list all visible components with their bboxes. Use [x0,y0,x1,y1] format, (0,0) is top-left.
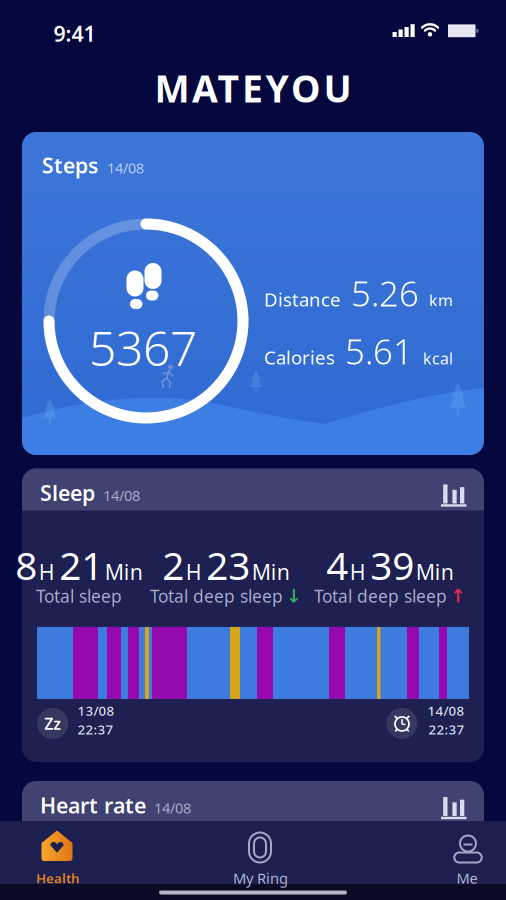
staticText: 14/08 [107,158,144,177]
staticText: 4 [326,539,348,591]
staticText: 23 [206,539,250,591]
staticText: Distance [264,287,341,312]
staticText: MATEYOU [154,63,351,113]
staticText: 14/08 [427,702,464,719]
staticText: Health [36,869,80,887]
staticText: Me [456,868,477,888]
staticText: 14/08 [154,798,191,817]
staticText: 21 [59,539,103,591]
staticText: Total sleep [36,585,122,608]
staticText: H [186,557,202,586]
staticText: Min [416,557,454,586]
staticText: kcal [423,348,453,369]
staticText: 9:41 [53,19,95,48]
staticText: 14/08 [103,485,140,505]
staticText: Calories [264,345,335,370]
staticText: ↑ [450,585,466,607]
staticText: Min [252,557,290,586]
staticText: 39 [370,539,414,591]
staticText: 22:37 [428,720,464,738]
staticText: Heart rate [40,791,146,819]
staticText: Min [105,557,143,586]
staticText: 2 [162,539,184,591]
staticText: 22:37 [77,720,113,738]
staticText: Zz [44,713,61,734]
staticText: 8 [15,539,37,591]
staticText: ↓ [286,585,302,607]
staticText: 5367 [89,316,197,379]
staticText: Total deep sleep [314,585,447,608]
staticText: My Ring [233,868,288,888]
staticText: km [429,290,453,311]
staticText: Sleep [40,478,95,507]
staticText: 13/08 [77,702,114,719]
staticText: H [39,557,55,586]
staticText: 5.61 [345,328,413,374]
staticText: Steps [42,151,99,179]
staticText: H [350,557,366,586]
staticText: 5.26 [351,270,419,316]
staticText: Total deep sleep [150,585,283,608]
